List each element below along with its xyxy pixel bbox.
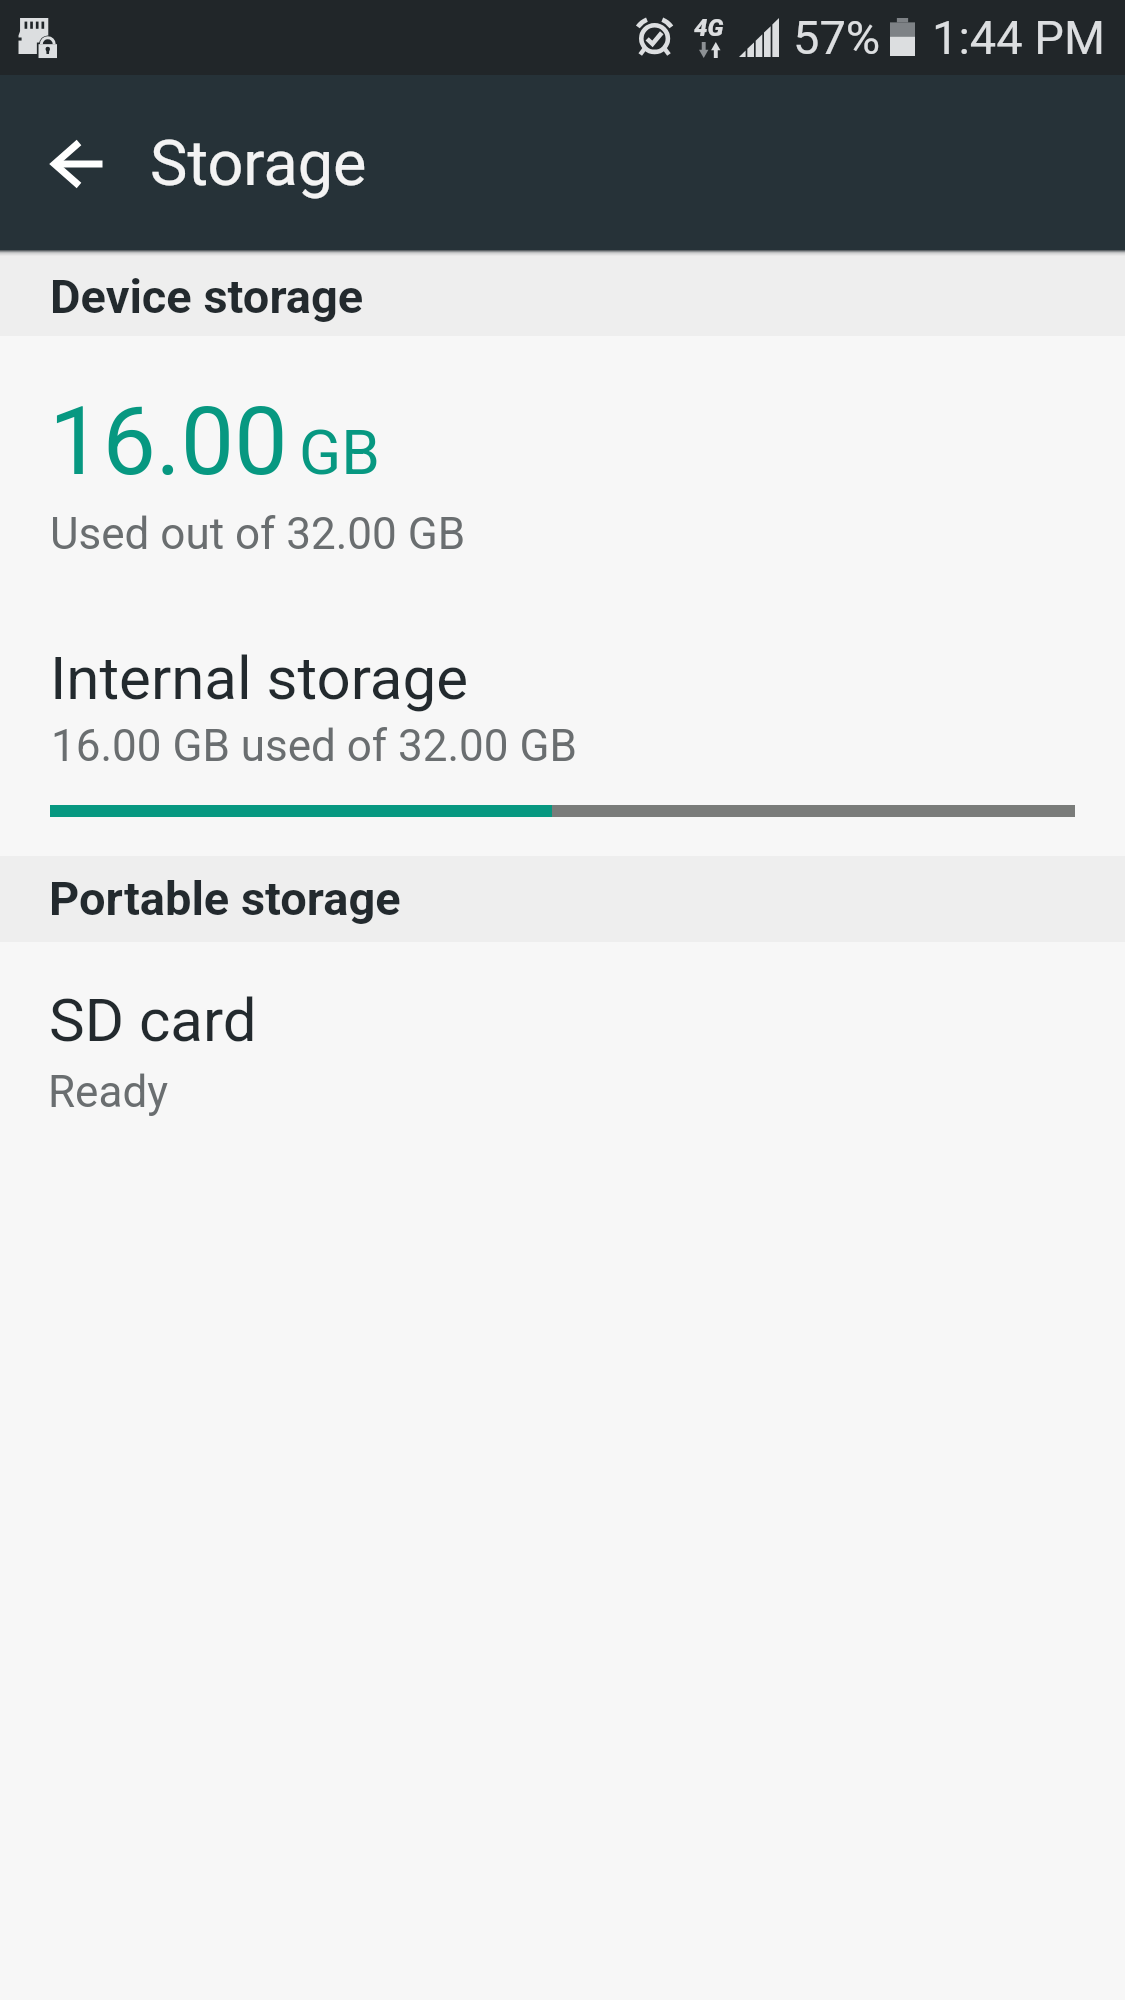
staticText: 16.00 (49, 386, 288, 497)
button[interactable]: SD card (0, 942, 1125, 1132)
staticText: 16.00 GB used of 32.00 GB (51, 720, 577, 772)
staticText: Ready (48, 1066, 169, 1118)
staticText: Portable storage (49, 871, 401, 926)
button[interactable]: Internal storage (0, 600, 1125, 840)
staticText: SD card (49, 985, 257, 1055)
other: SD card locked (18, 18, 57, 57)
staticText: Device storage (50, 269, 364, 324)
button[interactable]: Navigate up (15, 107, 139, 221)
staticText: Used out of 32.00 GB (50, 508, 466, 560)
staticText: GB (299, 416, 380, 489)
staticText: 1:44 PM (932, 10, 1105, 65)
staticText: Storage (150, 127, 367, 201)
staticText: 57% (793, 10, 881, 65)
staticText: Internal storage (50, 643, 469, 713)
staticText: 4G (694, 14, 724, 42)
